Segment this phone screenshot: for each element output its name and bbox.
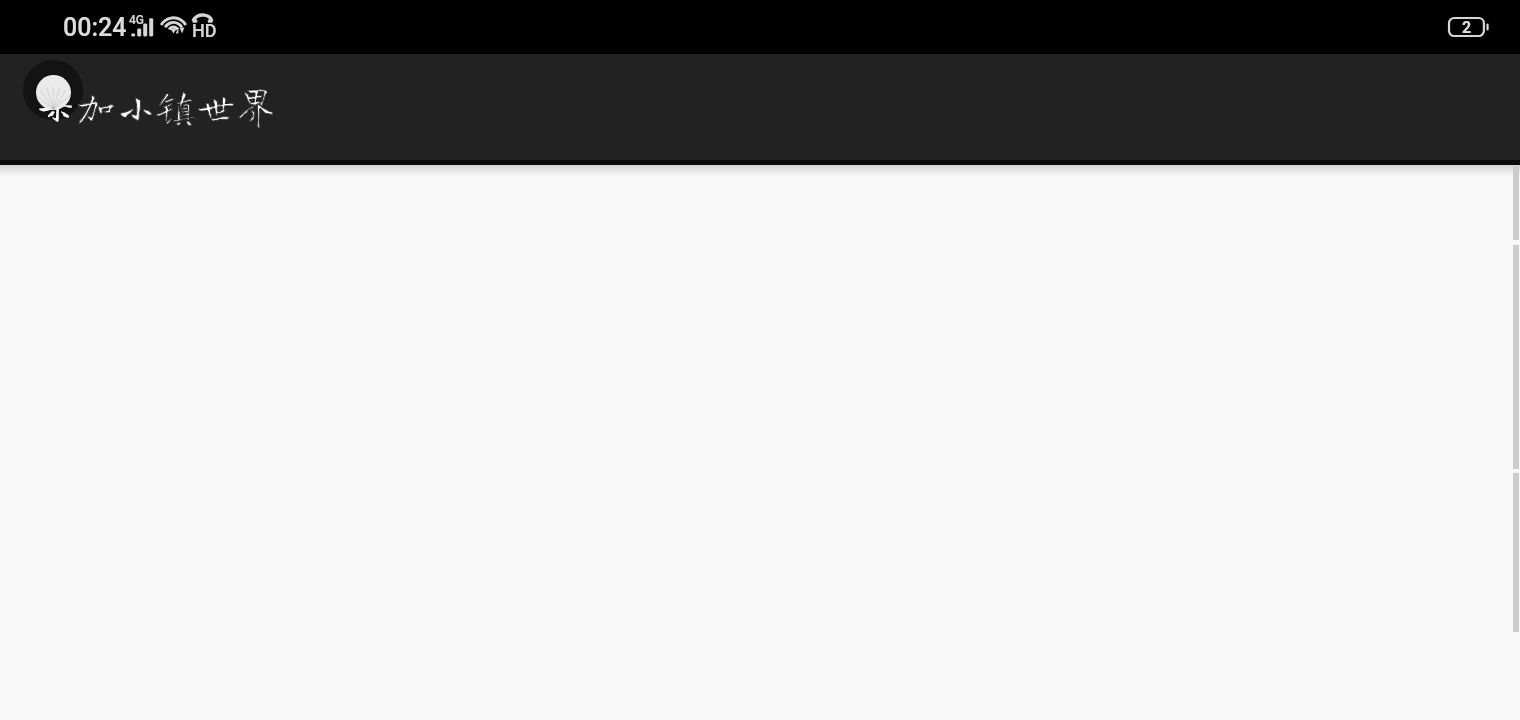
other: HD voice calling [192, 13, 218, 38]
staticText: 00:24 [63, 13, 127, 42]
other: 4G mobile signal, full strength [129, 14, 155, 38]
other: Wi-Fi connected [160, 11, 190, 35]
staticText: 2 [1462, 18, 1472, 37]
staticText: 米 [37, 86, 74, 123]
staticText: HD [192, 20, 217, 41]
staticText: 4G [129, 13, 144, 27]
other: Battery 2 percent [1448, 17, 1489, 37]
button[interactable]: 米 [16, 56, 280, 136]
staticText: 加小镇世界 [76, 86, 276, 126]
staticText: 加小镇世界 [76, 86, 276, 126]
